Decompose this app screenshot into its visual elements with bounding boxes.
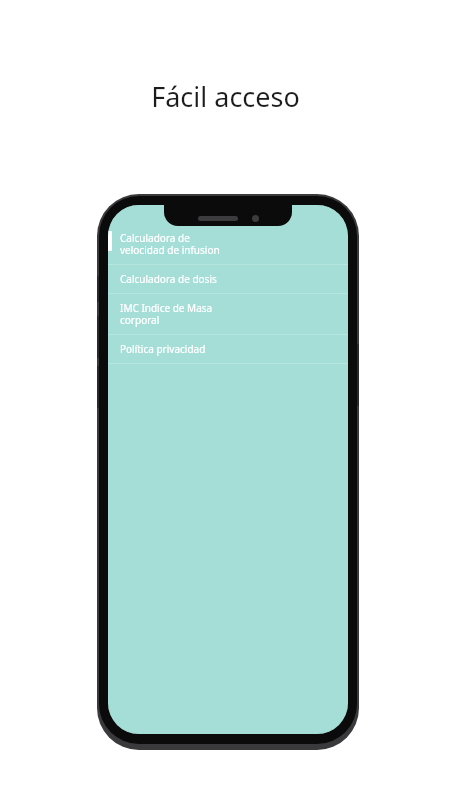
staticText: Política privacidad	[120, 342, 206, 356]
button[interactable]: IMC Indice de Masa corporal	[108, 294, 348, 334]
staticText: Fácil acceso	[151, 78, 300, 115]
staticText: Calculadora de velocidad de infusion	[120, 231, 220, 257]
button[interactable]: 0	[279, 362, 336, 377]
staticText: IMC Indice de Masa corporal	[120, 301, 213, 327]
button[interactable]: Política privacidad	[108, 335, 348, 363]
button[interactable]: Calculadora de dosis	[108, 265, 348, 293]
staticText: Calculadora de dosis	[120, 272, 217, 286]
button[interactable]: Calculadora de velocidad de infusion	[108, 224, 348, 264]
